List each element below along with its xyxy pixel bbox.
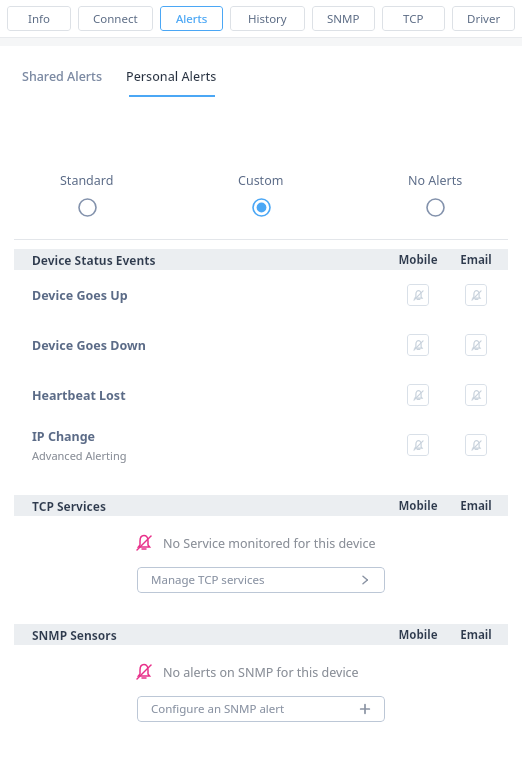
staticText: Advanced Alerting xyxy=(32,448,127,463)
button[interactable]: History xyxy=(230,6,305,31)
staticText: Alerts xyxy=(176,11,208,27)
button[interactable]: SNMP xyxy=(312,6,375,31)
button[interactable]: Toggle alert xyxy=(407,434,429,456)
button[interactable]: Heartbeat Lost xyxy=(14,370,508,420)
staticText: Device Status Events xyxy=(32,252,156,268)
button[interactable]: Configure an SNMP alert xyxy=(137,696,385,722)
staticText: Standard xyxy=(60,172,114,189)
button[interactable]: Device Goes Down xyxy=(14,320,508,370)
staticText: TCP Services xyxy=(32,498,106,514)
staticText: Email xyxy=(447,627,505,643)
staticText: Personal Alerts xyxy=(126,68,217,85)
staticText: SNMP xyxy=(327,11,360,27)
staticText: Email xyxy=(447,252,505,268)
button[interactable]: Toggle alert xyxy=(465,384,487,406)
button[interactable]: Toggle alert xyxy=(465,284,487,306)
button[interactable]: Toggle alert xyxy=(407,334,429,356)
staticText: Custom xyxy=(238,172,284,189)
button[interactable]: Driver xyxy=(452,6,515,31)
staticText: Driver xyxy=(467,11,501,27)
button[interactable]: Toggle alert xyxy=(407,284,429,306)
staticText: Manage TCP services xyxy=(151,572,265,588)
staticText: SNMP Sensors xyxy=(32,627,117,643)
button[interactable]: Alerts xyxy=(160,6,223,31)
staticText: Configure an SNMP alert xyxy=(151,701,285,717)
staticText: Device Goes Down xyxy=(32,337,146,354)
staticText: Email xyxy=(447,498,505,514)
staticText: No alerts on SNMP for this device xyxy=(163,664,359,681)
button[interactable]: Personal Alerts xyxy=(126,68,217,99)
staticText: Device Goes Up xyxy=(32,287,128,304)
staticText: Mobile xyxy=(389,627,447,643)
button[interactable]: Device Goes Up xyxy=(14,270,508,320)
staticText: No Service monitored for this device xyxy=(163,535,376,552)
button[interactable]: Info xyxy=(7,6,71,31)
staticText: Heartbeat Lost xyxy=(32,387,126,404)
button[interactable]: Manage TCP services xyxy=(137,567,385,593)
staticText: Info xyxy=(28,11,50,27)
staticText: TCP xyxy=(403,11,424,27)
button[interactable]: Toggle alert xyxy=(465,434,487,456)
button[interactable]: No Alerts xyxy=(348,172,522,217)
button[interactable]: Custom xyxy=(174,172,348,217)
button[interactable]: Shared Alerts xyxy=(22,68,102,100)
staticText: Mobile xyxy=(389,498,447,514)
button[interactable]: Connect xyxy=(78,6,153,31)
button[interactable]: Toggle alert xyxy=(465,334,487,356)
staticText: Mobile xyxy=(389,252,447,268)
staticText: Connect xyxy=(93,11,138,27)
staticText: Shared Alerts xyxy=(22,68,102,85)
button[interactable]: TCP xyxy=(382,6,445,31)
button[interactable]: IP Change xyxy=(14,420,508,470)
staticText: No Alerts xyxy=(408,172,463,189)
button[interactable]: Standard xyxy=(0,172,174,217)
staticText: IP Change xyxy=(32,428,96,445)
button[interactable]: Toggle alert xyxy=(407,384,429,406)
staticText: History xyxy=(248,11,287,27)
